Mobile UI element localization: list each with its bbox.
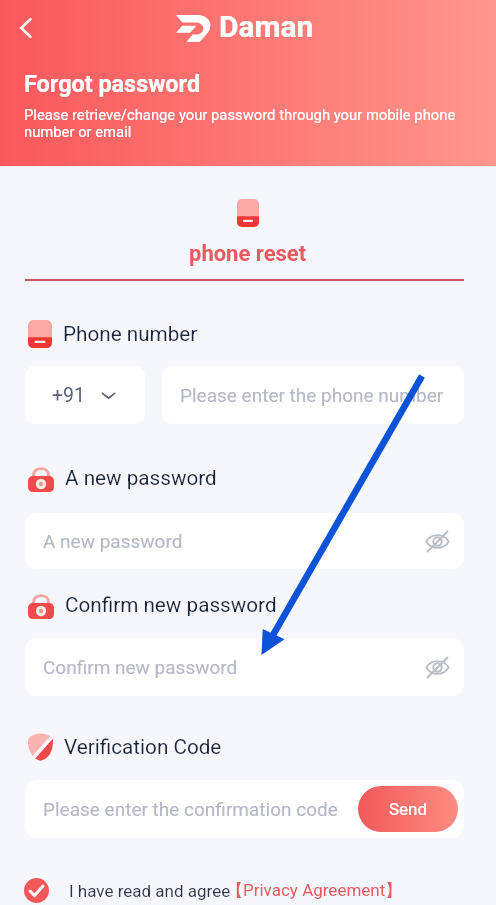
staticText: Forgot password bbox=[24, 70, 201, 97]
staticText: Please retrieve/change your password thr… bbox=[24, 106, 470, 141]
staticText: Please enter the confirmation code bbox=[43, 798, 338, 820]
button[interactable]: Please enter the phone number bbox=[162, 366, 464, 424]
staticText: 【Privacy Agreement】 bbox=[226, 880, 403, 901]
button[interactable]: I have read and agree bbox=[24, 878, 496, 903]
button[interactable]: Please enter the confirmation code bbox=[25, 780, 464, 838]
button[interactable]: Show password bbox=[422, 652, 452, 682]
button[interactable]: Confirm new password bbox=[25, 638, 464, 696]
button[interactable]: Back bbox=[6, 8, 46, 48]
button[interactable]: +91 bbox=[25, 366, 145, 424]
staticText: Daman bbox=[219, 9, 314, 44]
staticText: Confirm new password bbox=[65, 593, 277, 617]
staticText: +91 bbox=[52, 384, 85, 407]
button[interactable]: A new password bbox=[25, 513, 464, 569]
staticText: A new password bbox=[65, 466, 217, 490]
staticText: Send bbox=[389, 799, 428, 819]
staticText: Verification Code bbox=[64, 735, 222, 759]
staticText: phone reset bbox=[189, 241, 307, 267]
button[interactable]: Send bbox=[358, 786, 458, 832]
staticText: A new password bbox=[43, 530, 183, 552]
staticText: Confirm new password bbox=[43, 656, 238, 678]
staticText: Phone number bbox=[63, 322, 198, 346]
staticText: Please enter the phone number bbox=[180, 384, 444, 406]
button[interactable]: Show password bbox=[422, 526, 452, 556]
staticText: I have read and agree bbox=[69, 881, 231, 901]
